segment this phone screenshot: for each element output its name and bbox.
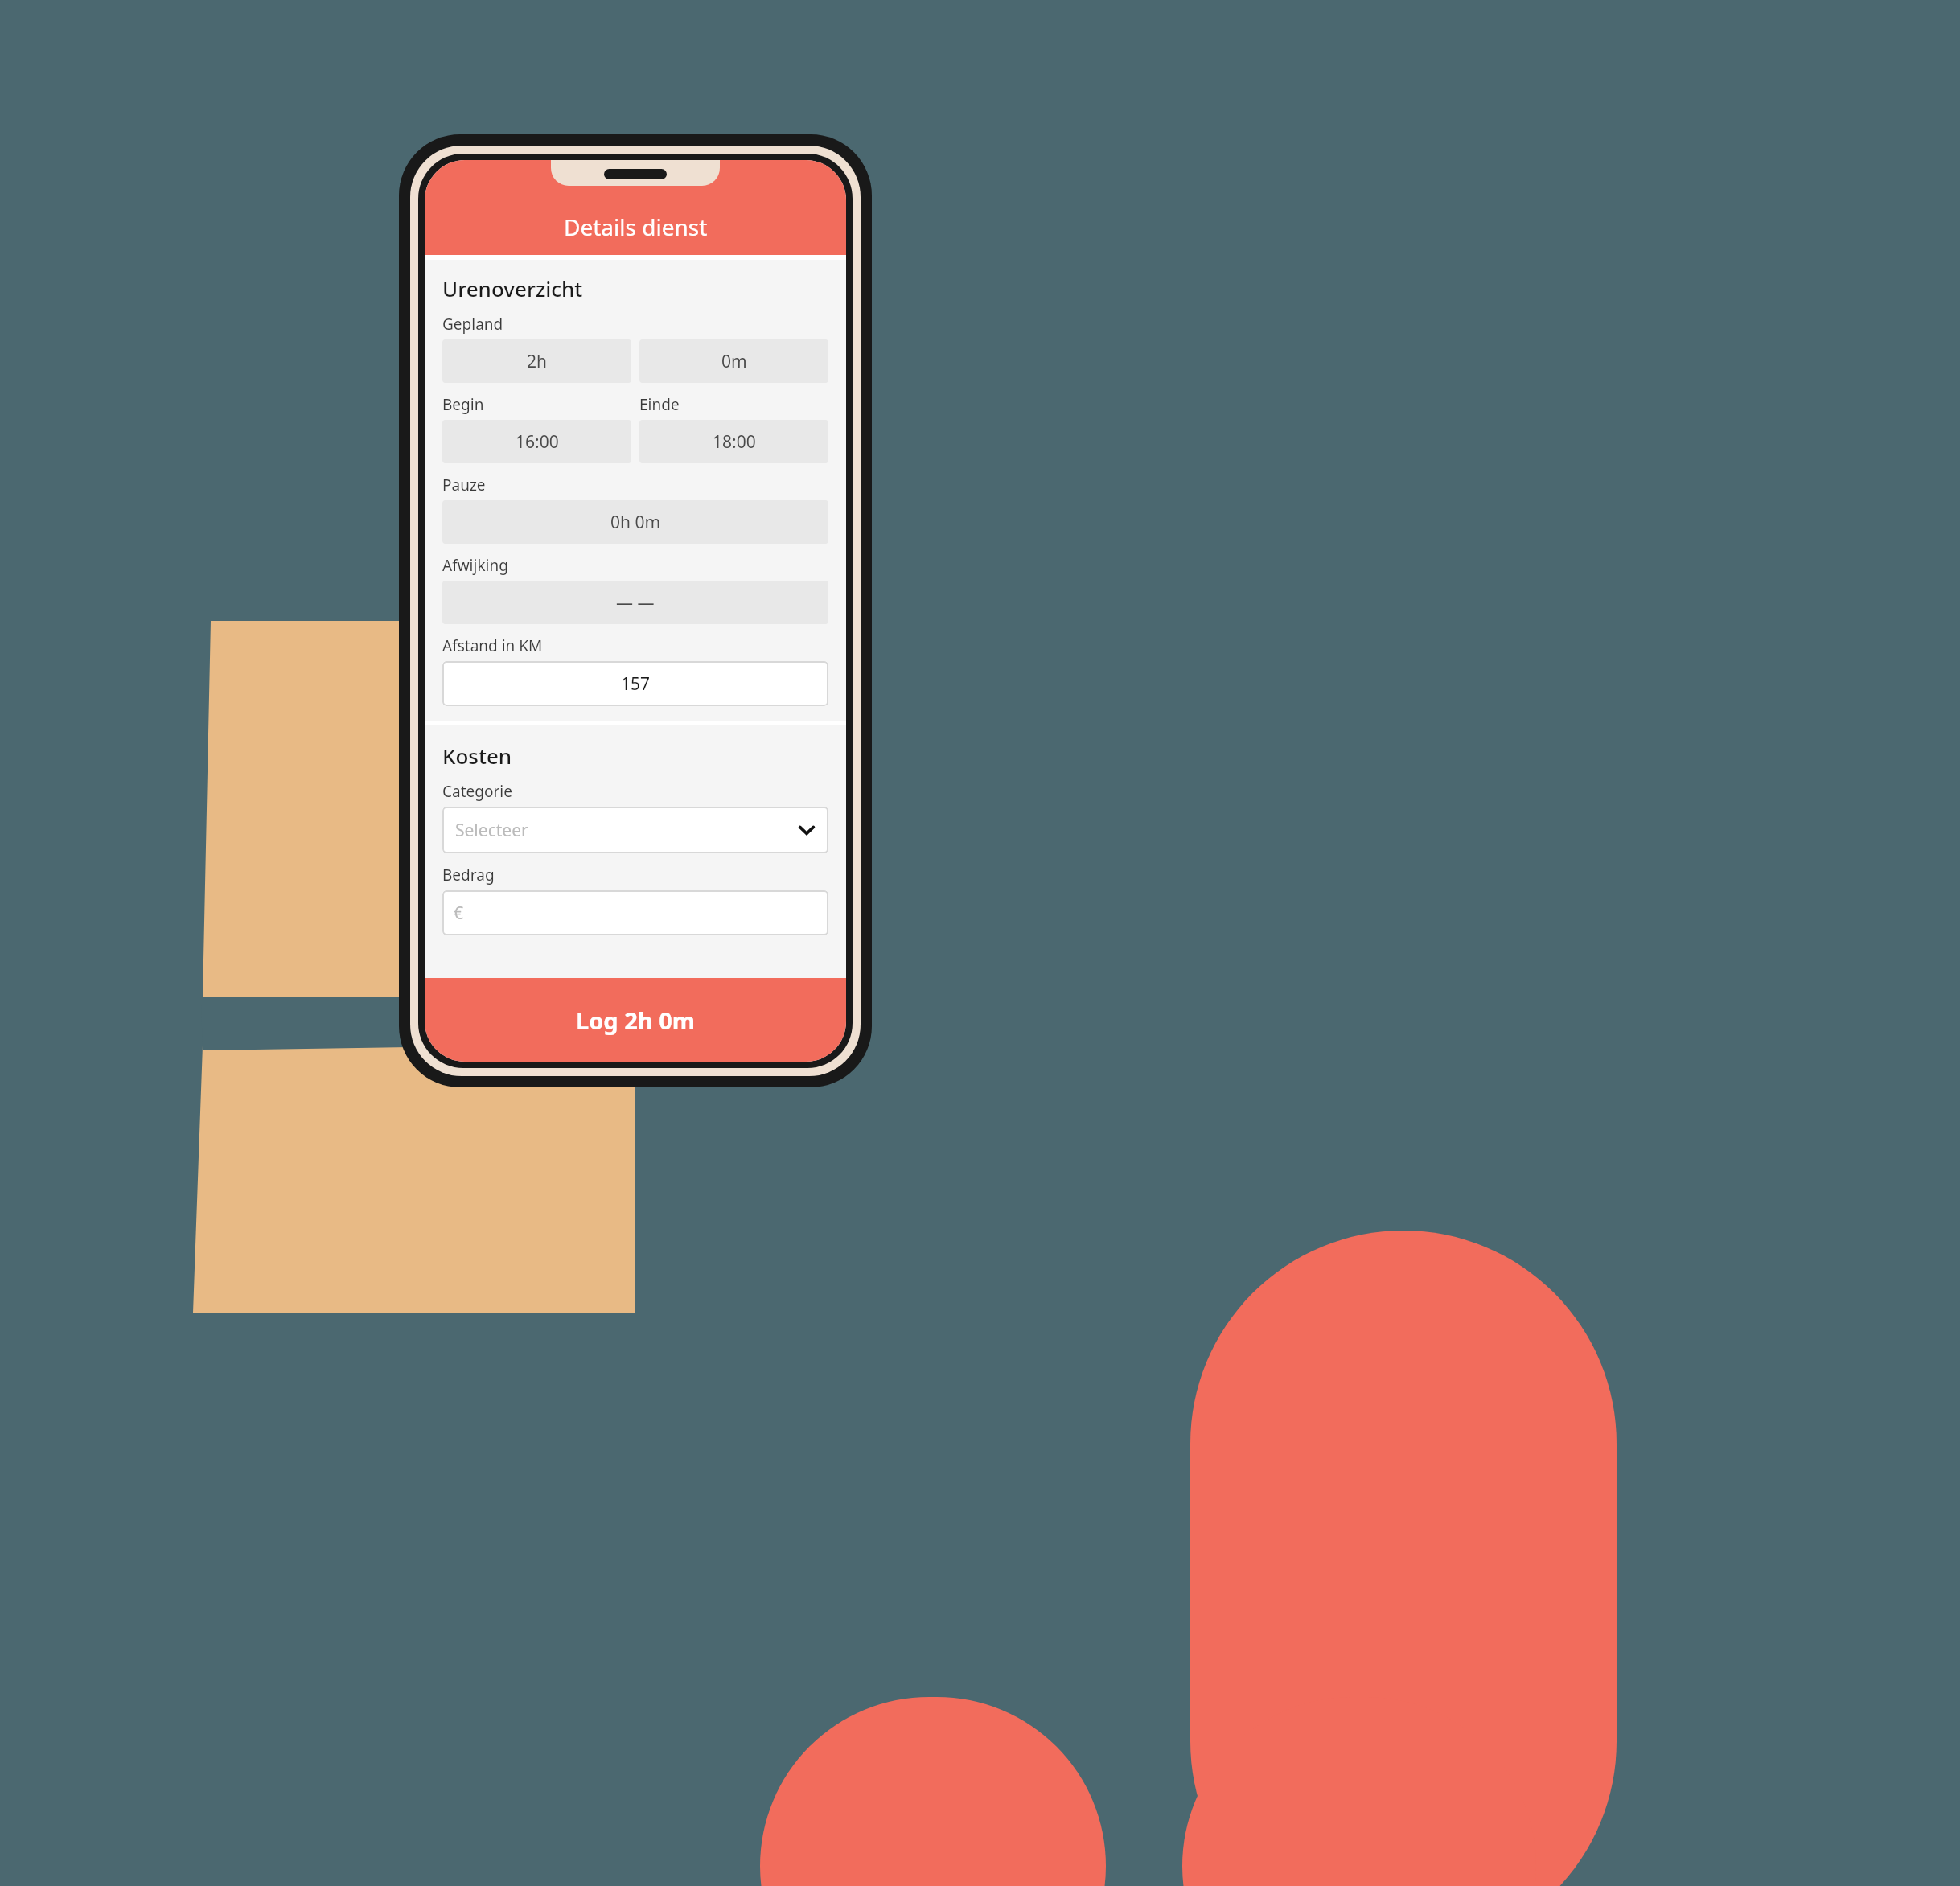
button[interactable]: Log 2h 0m [425, 978, 846, 1062]
button[interactable]: € [442, 890, 828, 935]
staticText: 157 [621, 672, 651, 696]
other: Open dropdown [798, 821, 816, 839]
staticText: Pauze [442, 475, 486, 495]
button[interactable]: 2h [442, 339, 631, 383]
button[interactable]: — — [442, 581, 828, 624]
staticText: Einde [639, 394, 680, 415]
staticText: Urenoverzicht [442, 274, 583, 302]
button[interactable]: 0m [639, 339, 828, 383]
staticText: 16:00 [516, 430, 559, 454]
staticText: Afstand in KM [442, 635, 543, 656]
staticText: Categorie [442, 781, 512, 802]
staticText: — — [616, 591, 655, 614]
button[interactable]: 16:00 [442, 420, 631, 463]
staticText: Kosten [442, 742, 512, 770]
staticText: Details dienst [564, 212, 708, 242]
staticText: 2h [527, 350, 547, 373]
staticText: 0h 0m [610, 511, 661, 534]
button[interactable]: 18:00 [639, 420, 828, 463]
button[interactable]: 0h 0m [442, 500, 828, 544]
button[interactable]: Selecteer [442, 807, 828, 853]
button[interactable]: 157 [442, 661, 828, 706]
staticText: Gepland [442, 314, 503, 335]
staticText: 0m [721, 350, 747, 373]
staticText: Log 2h 0m [576, 1005, 696, 1036]
staticText: Begin [442, 394, 484, 415]
staticText: 18:00 [713, 430, 756, 454]
staticText: Selecteer [455, 819, 798, 842]
staticText: Bedrag [442, 865, 495, 885]
staticText: € [454, 902, 464, 925]
staticText: Afwijking [442, 555, 508, 576]
